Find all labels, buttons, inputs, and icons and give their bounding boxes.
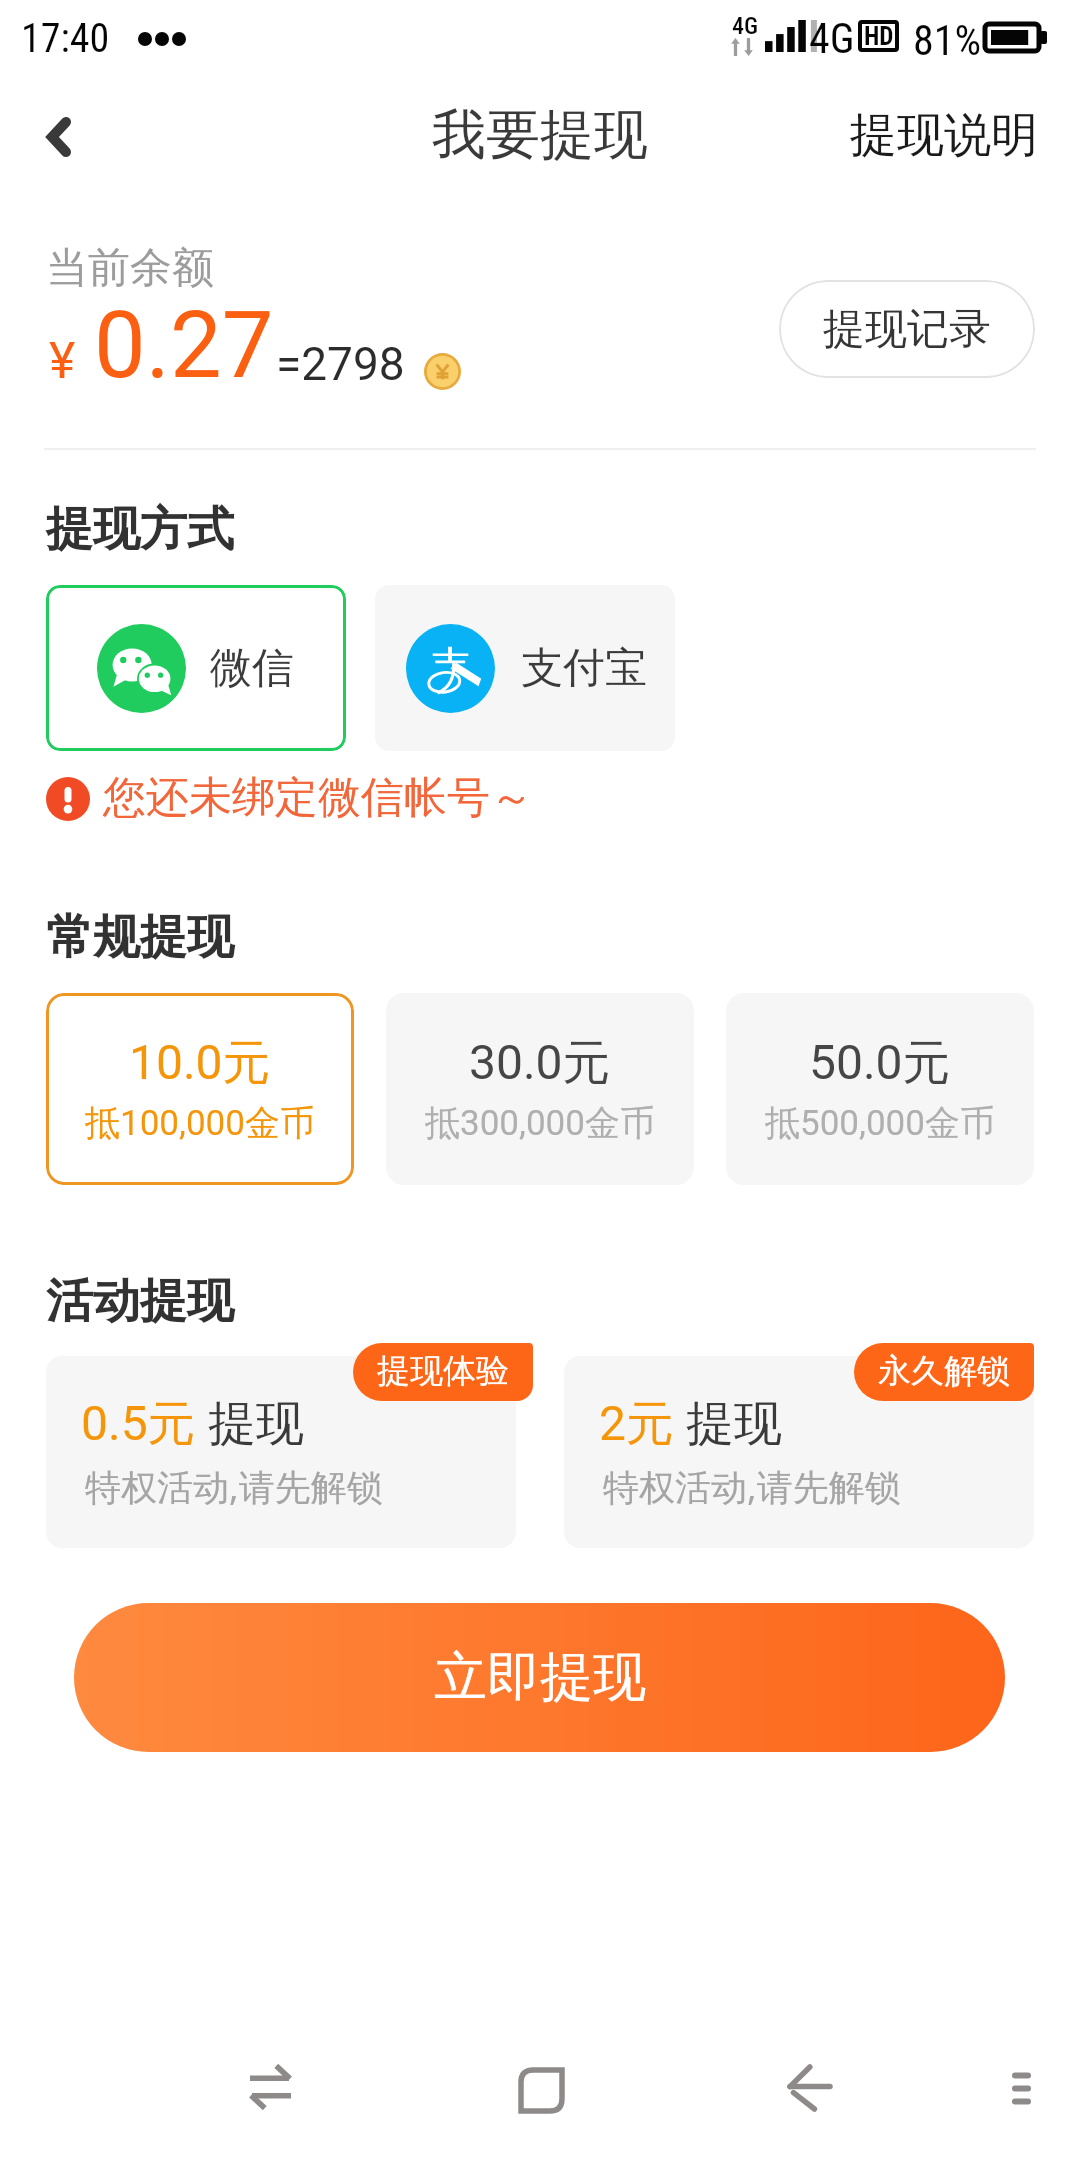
staticText: 50.0元 (809, 1033, 951, 1093)
button[interactable]: 返回 (749, 2027, 869, 2147)
button[interactable]: 0.5元 (46, 1356, 516, 1548)
button[interactable]: 2元 (564, 1356, 1034, 1548)
staticText: =2798 (276, 337, 405, 391)
staticText: 4G (732, 12, 759, 40)
staticText: 4G (809, 14, 855, 63)
staticText: 微信 (210, 642, 294, 695)
staticText: 提现 (686, 1394, 782, 1454)
staticText: 提现方式 (46, 500, 234, 559)
staticText: 10.0元 (129, 1033, 271, 1093)
staticText: 常规提现 (46, 908, 234, 967)
staticText: 提现体验 (377, 1350, 509, 1392)
staticText: 81% (913, 16, 982, 65)
button[interactable]: 菜单 (960, 2028, 1080, 2148)
button[interactable]: 30.0元 (386, 993, 694, 1185)
staticText: 提现说明 (850, 106, 1038, 165)
staticText: 0.27 (94, 292, 274, 400)
staticText: 特权活动,请先解锁 (603, 1462, 901, 1511)
staticText: 30.0元 (469, 1033, 611, 1093)
staticText: 我要提现 (432, 101, 648, 169)
staticText: 抵500,000金币 (765, 1101, 995, 1145)
button[interactable]: 立即提现 (74, 1603, 1005, 1752)
button[interactable]: 提现记录 (779, 280, 1035, 378)
staticText: 活动提现 (46, 1272, 234, 1331)
staticText: 17:40 (21, 15, 110, 62)
button[interactable]: 50.0元 (726, 993, 1034, 1185)
staticText: 支付宝 (521, 642, 647, 695)
staticText: 抵300,000金币 (425, 1101, 655, 1145)
staticText: 提现 (208, 1394, 304, 1454)
button[interactable]: 切换 (210, 2026, 330, 2146)
staticText: 永久解锁 (878, 1350, 1010, 1392)
staticText: 提现记录 (823, 303, 991, 356)
button[interactable]: 支付宝 (375, 585, 675, 751)
button[interactable]: 返回 (16, 90, 106, 180)
staticText: 0.5元 (81, 1394, 196, 1454)
staticText: 2元 (599, 1394, 674, 1454)
button[interactable]: 微信 (46, 585, 346, 751)
staticText: 抵100,000金币 (85, 1101, 315, 1145)
staticText: 当前余额 (46, 242, 214, 295)
button[interactable]: 提现说明 (834, 94, 1054, 177)
staticText: 特权活动,请先解锁 (85, 1462, 383, 1511)
staticText: 您还未绑定微信帐号～ (103, 771, 533, 825)
staticText: ¥ (49, 332, 76, 391)
button[interactable]: 最近任务 (480, 2028, 600, 2148)
staticText: HD (864, 22, 894, 51)
staticText: 立即提现 (434, 1644, 646, 1711)
button[interactable]: 10.0元 (46, 993, 354, 1185)
